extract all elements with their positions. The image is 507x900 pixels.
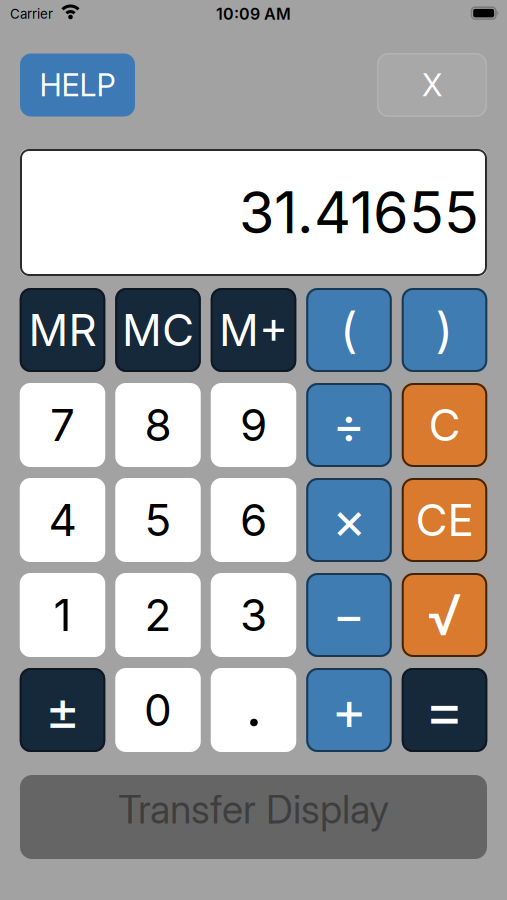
button[interactable]: M+ xyxy=(211,288,296,372)
staticText: − xyxy=(332,586,365,644)
staticText: 9 xyxy=(240,399,267,451)
button[interactable]: √ xyxy=(402,573,487,657)
button[interactable]: Transfer Display xyxy=(20,775,487,859)
staticText: ÷ xyxy=(332,396,365,454)
staticText: 2 xyxy=(144,589,171,641)
button[interactable]: = xyxy=(402,668,487,752)
staticText: ( xyxy=(340,302,358,358)
button[interactable]: + xyxy=(306,668,392,752)
staticText: √ xyxy=(427,582,462,648)
staticText: MC xyxy=(122,304,194,356)
button[interactable]: CE xyxy=(402,478,487,562)
staticText: 5 xyxy=(144,494,171,546)
button[interactable]: ÷ xyxy=(306,383,392,467)
button[interactable]: 5 xyxy=(115,478,201,562)
button[interactable] xyxy=(211,668,296,752)
staticText: 31.41655 xyxy=(239,179,479,246)
button[interactable]: 2 xyxy=(115,573,201,657)
staticText: 8 xyxy=(144,399,171,451)
button[interactable]: 6 xyxy=(211,478,296,562)
staticText: 7 xyxy=(50,399,75,451)
staticText: HELP xyxy=(39,67,115,103)
button[interactable]: ) xyxy=(402,288,487,372)
staticText: C xyxy=(428,399,460,451)
staticText: 6 xyxy=(240,494,267,546)
staticText: Carrier xyxy=(10,6,53,22)
button[interactable]: 1 xyxy=(20,573,105,657)
staticText: M+ xyxy=(219,304,288,356)
staticText: MR xyxy=(28,304,96,356)
button[interactable]: 4 xyxy=(20,478,105,562)
staticText: = xyxy=(424,675,464,745)
staticText: X xyxy=(422,67,442,103)
button[interactable]: 0 xyxy=(115,668,201,752)
button[interactable]: × xyxy=(306,478,392,562)
button[interactable]: HELP xyxy=(20,53,135,116)
button[interactable]: C xyxy=(402,383,487,467)
button[interactable]: MC xyxy=(115,288,201,372)
staticText: ) xyxy=(435,302,453,358)
button[interactable]: 9 xyxy=(211,383,296,467)
staticText: ± xyxy=(45,678,80,741)
button[interactable]: 8 xyxy=(115,383,201,467)
staticText: 4 xyxy=(48,494,76,546)
button[interactable]: 7 xyxy=(20,383,105,467)
staticText: Transfer Display xyxy=(118,787,389,832)
button[interactable]: ± xyxy=(20,668,105,752)
staticText: 1 xyxy=(53,589,71,641)
button[interactable]: − xyxy=(306,573,392,657)
button[interactable]: 3 xyxy=(211,573,296,657)
staticText: + xyxy=(331,678,366,741)
staticText: 3 xyxy=(240,589,267,641)
staticText: × xyxy=(332,489,366,551)
staticText: CE xyxy=(415,494,473,546)
button[interactable]: Close xyxy=(377,53,487,117)
button[interactable]: MR xyxy=(20,288,105,372)
button[interactable]: ( xyxy=(306,288,392,372)
staticText: 10:09 AM xyxy=(216,5,291,23)
staticText: 0 xyxy=(144,684,172,736)
